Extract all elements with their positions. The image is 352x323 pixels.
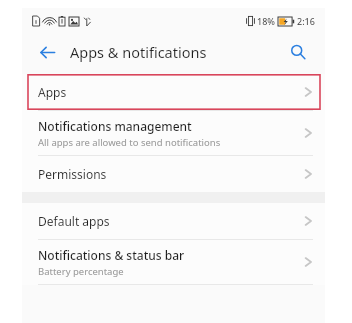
- button[interactable]: Search: [285, 39, 311, 65]
- staticText: Battery percentage: [38, 265, 124, 278]
- staticText: Notifications & status bar: [38, 247, 185, 263]
- staticText: 2:16: [297, 15, 315, 27]
- staticText: Apps: [38, 84, 67, 100]
- button[interactable]: Notifications & status bar: [22, 240, 325, 284]
- staticText: Default apps: [38, 213, 110, 229]
- staticText: Apps & notifications: [70, 42, 207, 62]
- staticText: Notifications management: [38, 118, 192, 134]
- staticText: 18%: [257, 15, 275, 27]
- staticText: All apps are allowed to send notificatio…: [38, 136, 221, 149]
- button[interactable]: Notifications management: [22, 111, 325, 155]
- button[interactable]: Apps: [22, 74, 325, 110]
- button[interactable]: Permissions: [22, 156, 325, 192]
- button[interactable]: Back: [34, 39, 60, 65]
- button[interactable]: Default apps: [22, 203, 325, 239]
- staticText: Permissions: [38, 166, 107, 182]
